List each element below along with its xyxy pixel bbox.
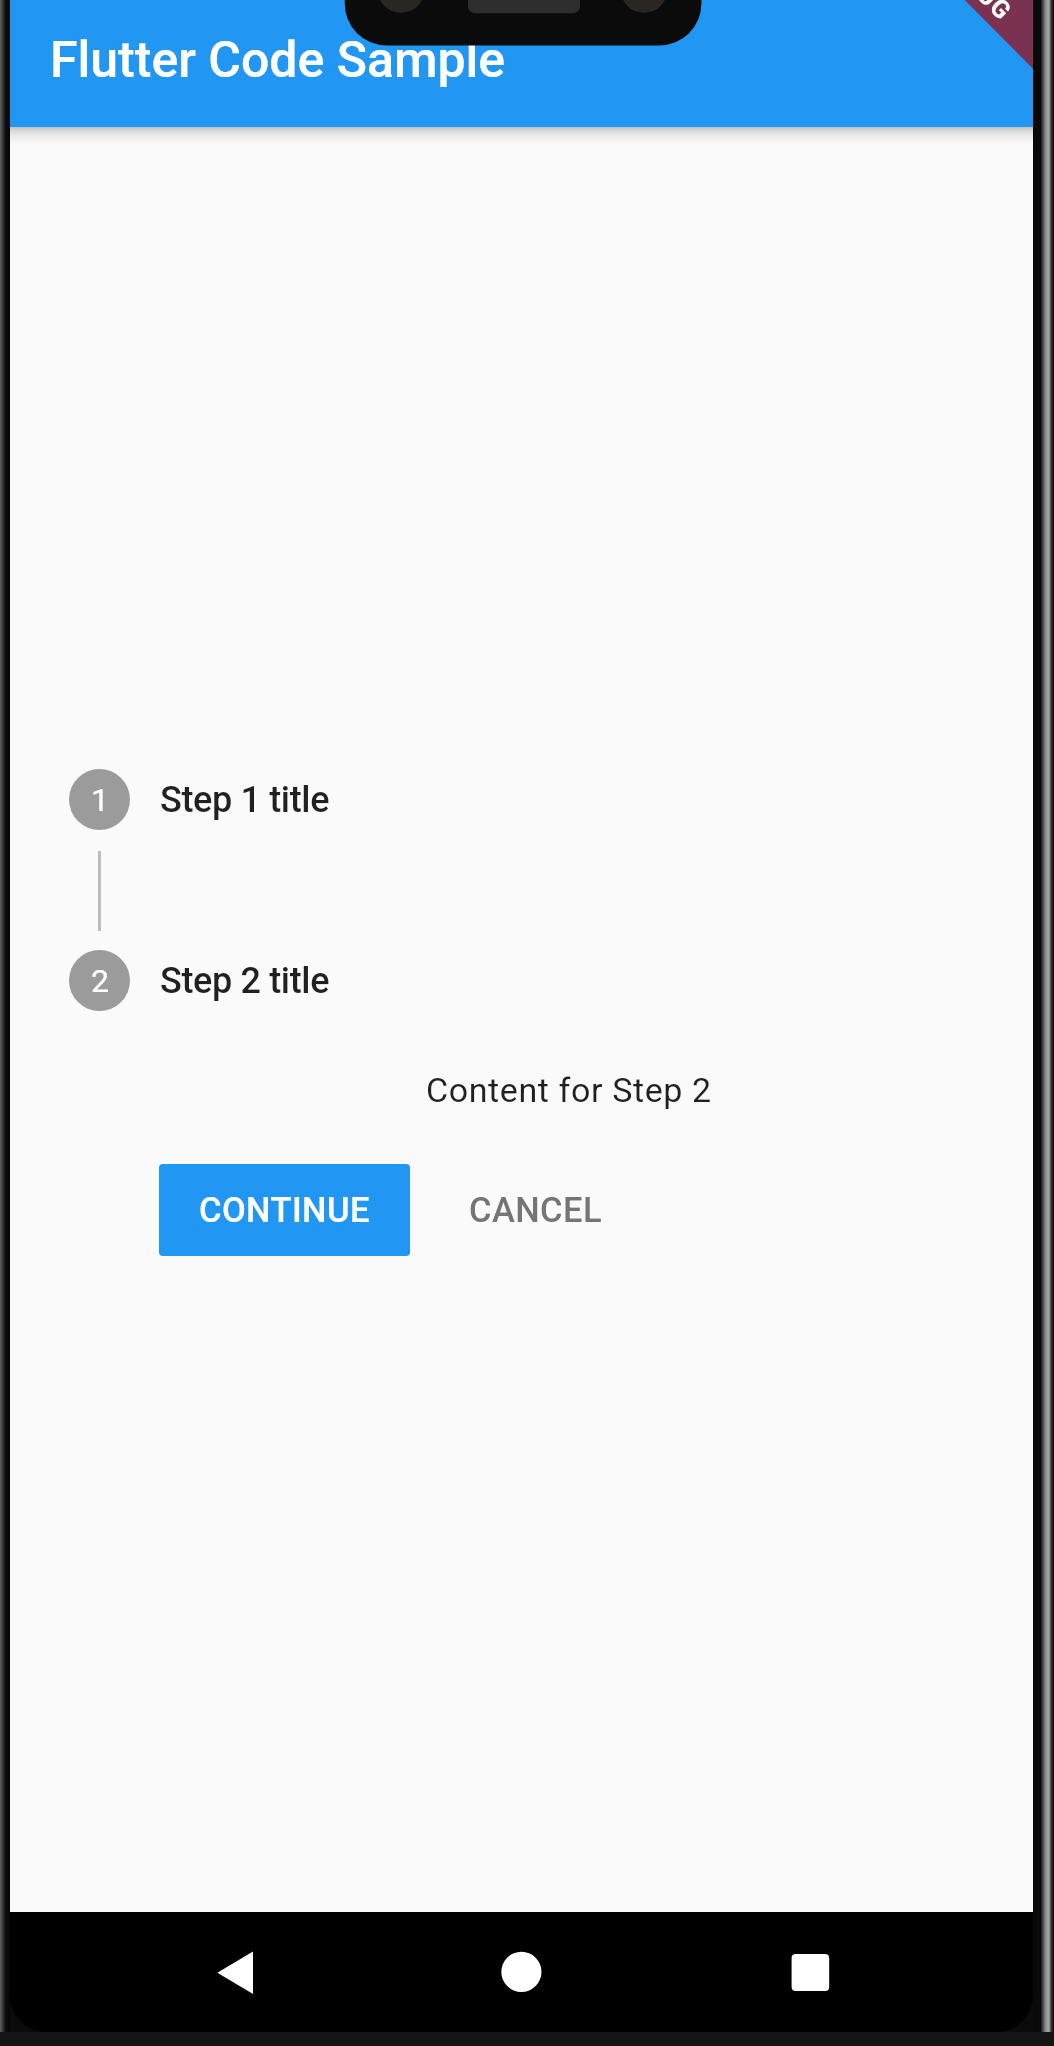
button[interactable]: Recents <box>760 1922 860 2022</box>
staticText: Flutter Code Sample <box>50 31 506 90</box>
button[interactable]: CANCEL <box>410 1164 642 1256</box>
staticText: CANCEL <box>469 1190 602 1230</box>
staticText: CONTINUE <box>199 1190 370 1230</box>
staticText: 2 <box>91 962 109 1000</box>
staticText: Step 2 title <box>160 960 330 1002</box>
staticText: Content for Step 2 <box>426 1070 712 1110</box>
button[interactable]: 1 <box>10 769 1033 830</box>
staticText: Step 1 title <box>160 779 330 821</box>
button[interactable]: CONTINUE <box>159 1164 410 1256</box>
button[interactable]: Back <box>185 1922 285 2022</box>
staticText: 1 <box>91 781 109 819</box>
button[interactable]: Home <box>471 1922 571 2022</box>
staticText: DEBUG <box>935 0 1018 27</box>
button[interactable]: 2 <box>10 950 1033 1011</box>
